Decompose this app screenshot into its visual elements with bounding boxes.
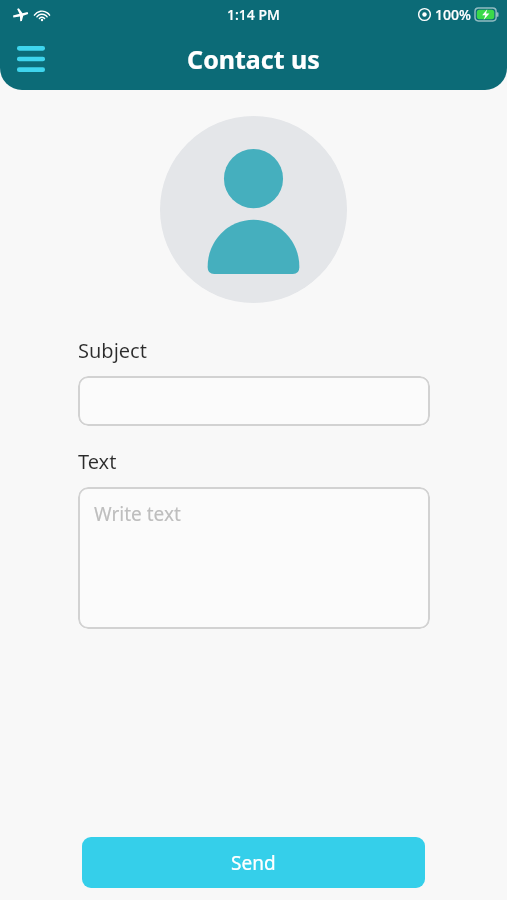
staticText: Write text xyxy=(94,501,181,527)
staticText: Send xyxy=(231,850,276,876)
button[interactable]: Send xyxy=(82,837,425,888)
staticText: 100% xyxy=(435,5,471,24)
staticText: 1:14 PM xyxy=(227,5,280,24)
button[interactable]: Profile picture xyxy=(160,116,347,303)
staticText: Text xyxy=(78,448,117,475)
button[interactable]: Write text xyxy=(78,487,430,629)
button[interactable]: Open navigation menu xyxy=(10,38,52,80)
button[interactable] xyxy=(78,376,430,426)
staticText: Contact us xyxy=(0,42,507,76)
staticText: Subject xyxy=(78,337,147,364)
